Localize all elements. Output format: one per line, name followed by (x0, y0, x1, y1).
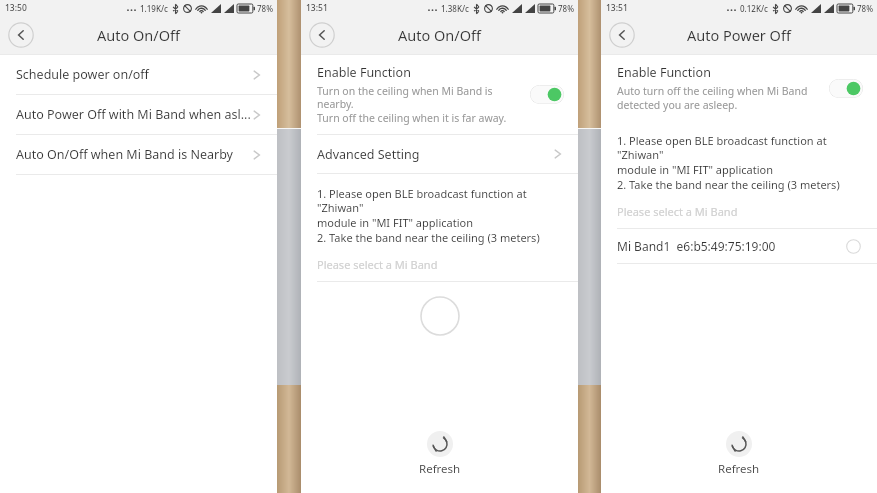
other: Refresh (427, 431, 453, 457)
button[interactable]: Back (8, 22, 34, 48)
staticText: Advanced Setting (317, 146, 554, 163)
staticText: 13:51 (606, 2, 628, 14)
staticText: 78% (558, 3, 574, 14)
button[interactable]: Advanced Setting (301, 135, 578, 173)
staticText: 13:51 (306, 2, 328, 14)
button[interactable]: Schedule power on/off (0, 55, 277, 94)
staticText: 1.19K/c (140, 3, 168, 14)
staticText: 13:50 (5, 2, 27, 14)
button[interactable]: Mi Band1 e6:b5:49:75:19:00 (601, 229, 877, 263)
staticText: module in "MI FIT" application (617, 162, 773, 177)
staticText: Auto Power Off with Mi Band when asl... (16, 106, 253, 123)
staticText: Turn on the ceiling when Mi Band is near… (317, 84, 522, 111)
staticText: 0.12K/c (740, 3, 768, 14)
button[interactable]: Auto Power Off with Mi Band when asl... (0, 95, 277, 134)
staticText: Auto On/Off (97, 25, 180, 45)
staticText: Turn off the ceiling when it is far away… (317, 111, 507, 125)
staticText: Auto On/Off (398, 25, 481, 45)
staticText: 78% (857, 3, 873, 14)
button[interactable]: Enable Function toggle (829, 79, 863, 98)
staticText: 2. Take the band near the ceiling (3 met… (317, 230, 540, 245)
staticText: Mi Band1 e6:b5:49:75:19:00 (617, 238, 846, 254)
button[interactable]: Enable Function (601, 55, 877, 121)
button[interactable]: Back (309, 22, 335, 48)
staticText: 1.38K/c (441, 3, 469, 14)
staticText: 78% (257, 3, 273, 14)
staticText: module in "MI FIT" application (317, 215, 473, 230)
staticText: Enable Function (317, 64, 411, 81)
staticText: Please select a Mi Band (617, 204, 738, 219)
staticText: Refresh (718, 461, 760, 477)
staticText: 2. Take the band near the ceiling (3 met… (617, 177, 840, 192)
other: Refresh (726, 431, 752, 457)
button[interactable]: Auto On/Off when Mi Band is Nearby (0, 135, 277, 174)
staticText: Auto Power Off (687, 25, 791, 45)
staticText: Schedule power on/off (16, 66, 253, 83)
staticText: Enable Function (617, 64, 711, 81)
staticText: Refresh (419, 461, 461, 477)
staticText: 1. Please open BLE broadcast function at… (317, 186, 562, 215)
button[interactable]: Enable Function toggle (530, 85, 564, 104)
staticText: Auto On/Off when Mi Band is Nearby (16, 146, 253, 163)
button[interactable]: Back (609, 22, 635, 48)
staticText: detected you are asleep. (617, 98, 738, 112)
staticText: Please select a Mi Band (317, 257, 438, 272)
staticText: 1. Please open BLE broadcast function at… (617, 133, 861, 162)
staticText: Auto turn off the ceiling when Mi Band (617, 84, 808, 98)
button[interactable]: Enable Function (301, 55, 578, 134)
button[interactable]: Refresh (301, 431, 578, 477)
button[interactable]: Refresh (601, 431, 877, 477)
